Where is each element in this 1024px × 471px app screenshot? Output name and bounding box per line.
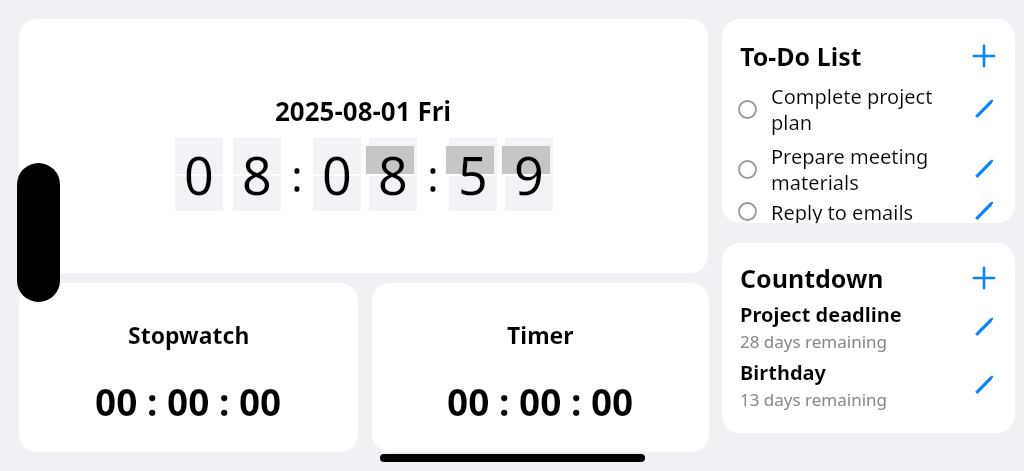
- staticText: To-Do List: [740, 39, 862, 73]
- button[interactable]: Timer: [372, 283, 709, 452]
- staticText: 00 : 00 : 00: [447, 376, 634, 426]
- button[interactable]: 9: [505, 138, 553, 211]
- staticText: Stopwatch: [128, 319, 250, 350]
- button[interactable]: Add Countdown item: [969, 263, 999, 293]
- staticText: Birthday: [740, 359, 826, 386]
- staticText: 0: [322, 139, 352, 210]
- button[interactable]: Edit: [969, 199, 999, 223]
- button[interactable]: 0: [313, 138, 361, 211]
- staticText: Complete project plan: [771, 83, 961, 136]
- staticText: 5: [458, 139, 488, 210]
- staticText: Prepare meeting materials: [771, 143, 961, 196]
- staticText: Countdown: [740, 261, 884, 295]
- staticText: Timer: [507, 319, 574, 350]
- staticText: Reply to emails: [771, 199, 914, 223]
- staticText: Project deadline: [740, 301, 902, 328]
- button[interactable]: 5: [449, 138, 497, 211]
- staticText: 8: [378, 139, 408, 210]
- button[interactable]: Add To-Do List item: [969, 41, 999, 71]
- staticText: 8: [242, 139, 272, 210]
- button[interactable]: Reply to emails: [738, 199, 999, 223]
- button[interactable]: Stopwatch: [19, 283, 358, 452]
- staticText: 2025-08-01 Fri: [275, 93, 452, 128]
- staticText: :: [291, 145, 303, 205]
- button[interactable]: Project deadline: [740, 301, 999, 353]
- staticText: 9: [514, 139, 544, 210]
- staticText: 13 days remaining: [740, 388, 888, 411]
- button[interactable]: Complete project plan: [738, 79, 999, 139]
- button[interactable]: 8: [369, 138, 417, 211]
- button[interactable]: Edit: [969, 370, 999, 400]
- button[interactable]: Edit: [969, 154, 999, 184]
- staticText: :: [427, 145, 439, 205]
- button[interactable]: Birthday: [740, 359, 999, 411]
- staticText: 0: [184, 139, 214, 210]
- button[interactable]: 2025-08-01 Fri: [19, 19, 708, 273]
- button[interactable]: Edit: [969, 94, 999, 124]
- staticText: 00 : 00 : 00: [95, 376, 282, 426]
- button[interactable]: Edit: [969, 312, 999, 342]
- button[interactable]: 0: [175, 138, 223, 211]
- button[interactable]: Prepare meeting materials: [738, 139, 999, 199]
- button[interactable]: 8: [233, 138, 281, 211]
- staticText: 28 days remaining: [740, 330, 888, 353]
